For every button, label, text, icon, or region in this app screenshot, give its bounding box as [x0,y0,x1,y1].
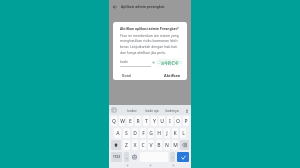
button[interactable]: . [170,152,175,162]
button[interactable]: A [114,128,121,138]
button[interactable]: X [132,140,138,150]
button[interactable]: D [132,128,138,138]
button[interactable]: K [172,128,178,138]
staticText: J [166,130,168,137]
button[interactable]: C [140,140,146,150]
staticText: M [173,142,178,149]
button[interactable]: Expand suggestions [111,107,117,113]
button[interactable]: Backspace [180,140,189,150]
staticText: . [172,154,174,160]
button[interactable]: H [156,128,162,138]
staticText: A [116,130,120,137]
button[interactable]: S [123,128,130,138]
button[interactable]: Z [123,140,130,150]
staticText: V [149,142,153,149]
button[interactable]: Shift [111,140,121,150]
button[interactable]: Voice input [184,108,189,113]
staticText: Aktifkan aplikasi admin Perangkat? [120,26,179,30]
staticText: kodenya [162,108,182,112]
button[interactable]: U [159,116,165,126]
staticText: I [169,118,171,125]
button[interactable]: R [135,116,141,126]
button[interactable]: Aktifkan [164,73,181,78]
button[interactable]: I [167,116,173,126]
staticText: R [136,118,140,125]
button[interactable]: B [156,140,162,150]
staticText: Aplikasi admin perangkat [121,4,165,9]
button[interactable]: , [124,152,129,162]
staticText: Fitur ini memberikan izin sistem yang me… [120,33,181,55]
staticText: x4RC4 [161,59,178,67]
staticText: B [157,142,161,149]
button[interactable]: ?123 [111,152,122,162]
staticText: D [133,130,137,137]
button[interactable]: Back [122,163,132,168]
staticText: N [165,142,169,149]
button[interactable]: Y [151,116,157,126]
button[interactable]: M [172,140,178,150]
staticText: ?123 [113,155,120,159]
button[interactable]: V [148,140,154,150]
button[interactable]: L [180,128,186,138]
staticText: T [145,118,148,125]
staticText: kode aja [142,108,162,112]
button[interactable]: G [148,128,154,138]
staticText: K [173,130,177,137]
staticText: E [129,118,132,125]
button[interactable]: Enter [177,152,189,162]
button[interactable]: Q [111,116,117,126]
staticText: L [182,130,185,137]
staticText: G [149,130,153,137]
staticText: Aktifkan [164,73,181,78]
button[interactable]: F [140,128,146,138]
staticText: X [133,142,137,149]
staticText: , [126,154,128,160]
staticText: F [142,130,145,137]
button[interactable]: Batal [122,73,132,78]
staticText: kodev [122,108,142,112]
button[interactable]: J [164,128,170,138]
staticText: S [125,130,128,137]
button[interactable]: T [143,116,149,126]
staticText: Batal [122,73,132,78]
staticText: C [141,142,145,149]
staticText: Y [153,118,156,125]
button[interactable]: Recents [168,163,178,168]
staticText: Z [125,142,128,149]
button[interactable]: Back [112,4,118,10]
button[interactable]: P [183,116,189,126]
button[interactable]: W [119,116,125,126]
staticText: P [184,118,188,125]
staticText: H [157,130,161,137]
button[interactable]: E [127,116,133,126]
staticText: kode [120,59,128,64]
button[interactable]: Emoji [131,152,138,162]
staticText: O [176,118,180,125]
staticText: W [120,118,125,125]
button[interactable]: O [175,116,181,126]
staticText: U [160,118,164,125]
button[interactable]: Home [145,163,155,168]
button[interactable]: N [164,140,170,150]
staticText: Q [112,118,116,125]
